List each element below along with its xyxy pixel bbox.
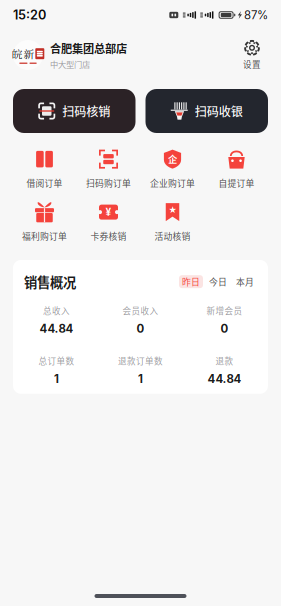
staticText: 新增会员 [206, 304, 242, 317]
staticText: 退款订单数 [118, 354, 163, 367]
button[interactable]: 企 [140, 147, 204, 192]
button[interactable]: 扫码收银 [145, 89, 268, 133]
staticText: 87% [244, 8, 268, 22]
staticText: 扫码核销 [62, 102, 110, 120]
staticText: 今日 [209, 275, 227, 288]
staticText: 15:20 [13, 7, 46, 23]
button[interactable]: 本月 [233, 275, 257, 288]
button[interactable]: 设置 [236, 40, 268, 70]
staticText: 0 [220, 322, 228, 336]
staticText: 44.84 [39, 322, 73, 336]
staticText: 总收入 [43, 304, 70, 317]
staticText: 昨日 [182, 275, 200, 288]
staticText: 合肥集团总部店 [50, 40, 127, 56]
staticText: ¥ [105, 206, 111, 218]
staticText: 设置 [243, 58, 261, 70]
staticText: 企 [168, 152, 177, 165]
button[interactable]: 自提订单 [204, 147, 268, 192]
button[interactable]: ★ [140, 200, 204, 245]
staticText: 会员收入 [122, 304, 158, 317]
staticText: 1 [138, 372, 143, 386]
button[interactable]: 福利购订单 [12, 200, 76, 245]
staticText: 中大型门店 [50, 58, 90, 70]
button[interactable]: 昨日 [179, 275, 203, 288]
button[interactable]: 借阅订单 [12, 147, 76, 192]
staticText: 扫码购订单 [86, 177, 131, 189]
staticText: 福利购订单 [22, 230, 67, 242]
staticText: 1 [54, 372, 59, 386]
button[interactable]: 扫码核销 [13, 89, 135, 133]
staticText: ★ [168, 204, 176, 215]
staticText: 自提订单 [218, 177, 254, 189]
button[interactable]: ¥ [76, 200, 140, 245]
staticText: 卡券核销 [90, 230, 126, 242]
staticText: 销售概况 [24, 272, 76, 291]
staticText: 活动核销 [154, 230, 190, 242]
staticText: 新 [23, 46, 34, 61]
staticText: 皖 [12, 46, 23, 61]
staticText: 0 [136, 322, 144, 336]
staticText: 企业购订单 [150, 177, 195, 189]
staticText: 借阅订单 [26, 177, 62, 189]
button[interactable]: 扫码购订单 [76, 147, 140, 192]
staticText: 44.84 [207, 372, 241, 386]
staticText: 总订单数 [38, 354, 74, 367]
staticText: 本月 [236, 275, 254, 288]
staticText: 退款 [215, 354, 233, 367]
button[interactable]: 今日 [206, 275, 230, 288]
staticText: 扫码收银 [195, 102, 243, 120]
